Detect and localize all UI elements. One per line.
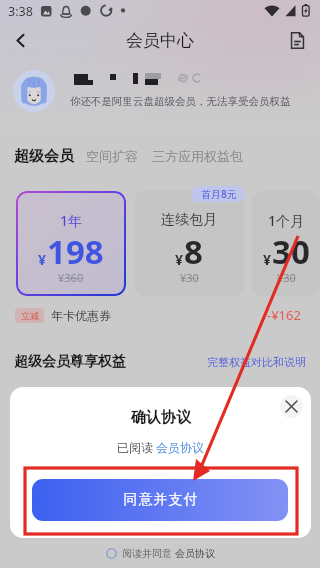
button[interactable]: 三方应用权益包: [152, 148, 243, 164]
staticText: ¥: [263, 250, 272, 269]
staticText: 1个月: [268, 211, 305, 230]
staticText: 同意并支付: [123, 491, 198, 509]
staticText: 三方应用权益包: [152, 148, 243, 164]
staticText: 8: [184, 229, 203, 274]
button[interactable]: 同意并支付: [32, 479, 288, 521]
button[interactable]: 会员协议: [156, 440, 204, 455]
staticText: ¥30: [277, 270, 296, 285]
staticText: 会员协议: [175, 547, 215, 560]
staticText: 空间扩容: [86, 148, 138, 164]
staticText: 年卡优惠券: [51, 308, 111, 323]
button[interactable]: 完整权益对比和说明: [207, 355, 306, 369]
button[interactable]: 连续包月: [134, 191, 244, 296]
staticText: 3:38: [8, 3, 33, 20]
button[interactable]: Close: [280, 395, 303, 418]
button[interactable]: 1年: [16, 191, 126, 296]
staticText: ¥360: [58, 270, 84, 285]
staticText: ¥: [175, 250, 184, 269]
staticText: ¥30: [180, 270, 199, 285]
staticText: 会员中心: [126, 30, 194, 51]
staticText: 已阅读: [117, 440, 153, 455]
staticText: 会员协议: [156, 440, 204, 455]
staticText: 超级会员尊享权益: [14, 353, 126, 371]
button[interactable]: Orders: [281, 24, 313, 56]
button[interactable]: Back: [4, 24, 36, 56]
staticText: 首月8元: [201, 187, 237, 201]
staticText: ¥: [38, 250, 47, 269]
staticText: 确认协议: [131, 408, 191, 427]
button[interactable]: 1个月: [252, 191, 320, 296]
staticText: 超级会员: [14, 147, 74, 166]
staticText: 连续包月: [161, 211, 217, 229]
staticText: 30: [272, 229, 310, 274]
staticText: 完整权益对比和说明: [207, 355, 306, 369]
button[interactable]: 空间扩容: [86, 148, 138, 164]
staticText: 立减: [21, 310, 39, 321]
staticText: 你还不是阿里云盘超级会员，无法享受会员权益: [70, 95, 291, 108]
staticText: 1年: [60, 211, 83, 230]
button[interactable]: 超级会员: [14, 147, 74, 166]
staticText: -¥162: [267, 306, 301, 324]
staticText: 198: [47, 229, 104, 274]
staticText: 阅读并同意: [122, 547, 172, 560]
